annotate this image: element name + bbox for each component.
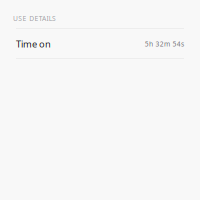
button[interactable]: Time on: [0, 29, 200, 59]
staticText: 5h 32m 54s: [145, 40, 184, 48]
staticText: Time on: [16, 38, 51, 50]
staticText: USE DETAILS: [13, 14, 56, 23]
